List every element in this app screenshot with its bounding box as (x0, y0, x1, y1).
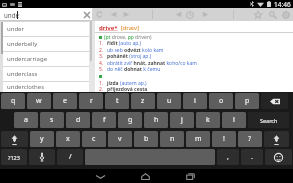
button[interactable]: f (92, 112, 116, 128)
staticText: drive* [draɪv] (99, 24, 139, 32)
button[interactable]: z (131, 93, 155, 109)
staticText: 2. (99, 47, 104, 54)
staticText: 1. (99, 40, 104, 47)
button[interactable]: w (27, 93, 51, 109)
button[interactable]: Emoji (265, 149, 292, 165)
button[interactable]: t (105, 93, 129, 109)
staticText: r (90, 96, 93, 106)
button[interactable]: Voice input (29, 149, 55, 165)
button[interactable]: q (1, 93, 25, 109)
button[interactable]: o (209, 93, 233, 109)
staticText: Search (260, 117, 278, 124)
button[interactable]: Forward (199, 8, 211, 21)
staticText: příjezdová cesta (107, 86, 148, 93)
staticText: . (251, 152, 253, 162)
button[interactable]: h (144, 112, 168, 128)
button[interactable]: e (53, 93, 77, 109)
button[interactable]: Shift (264, 131, 289, 147)
button[interactable]: l (222, 112, 246, 128)
button[interactable]: ?123 (1, 149, 27, 165)
button[interactable]: Swap languages (93, 8, 105, 21)
staticText: 3. (99, 53, 104, 60)
staticText: 1. (99, 80, 104, 87)
staticText: 4. (99, 60, 104, 67)
button[interactable]: underclothes (0, 82, 89, 92)
button[interactable]: n (160, 131, 184, 147)
button[interactable]: Settings (280, 8, 292, 21)
button[interactable]: Shift (1, 131, 28, 147)
button[interactable]: c (82, 131, 106, 147)
button[interactable]: . (241, 149, 263, 165)
button[interactable]: y (30, 131, 54, 147)
button[interactable]: Favorite (252, 8, 264, 21)
staticText: p (245, 96, 250, 106)
button[interactable]: m (186, 131, 210, 147)
button[interactable]: Search (267, 8, 279, 21)
button[interactable]: Clear (84, 12, 90, 18)
staticText: g (128, 115, 133, 125)
staticText: underbelly (7, 40, 38, 48)
button[interactable]: r (79, 93, 103, 109)
button[interactable]: Recents (179, 169, 201, 183)
staticText: q (11, 96, 16, 106)
button[interactable]: underbelly (0, 37, 89, 51)
button[interactable]: / (57, 149, 83, 165)
button[interactable]: underclass (0, 67, 89, 81)
staticText: 14:46 (274, 0, 291, 8)
staticText: / (69, 152, 72, 162)
staticText: do něč dohnat k čemu (107, 66, 161, 73)
button[interactable]: x (56, 131, 80, 147)
staticText: ! (223, 134, 225, 144)
staticText: underclass (7, 70, 38, 78)
button[interactable]: History (184, 8, 196, 21)
button[interactable]: under (0, 22, 89, 36)
staticText: x (66, 134, 70, 144)
button[interactable]: 3. (99, 53, 152, 60)
button[interactable]: Search (248, 112, 289, 128)
button[interactable]: ? (238, 131, 262, 147)
staticText: (pt drove, pp driven) (104, 34, 152, 41)
staticText: řídit (auto ap.) (107, 40, 142, 47)
staticText: under (7, 25, 24, 33)
button[interactable]: i (183, 93, 207, 109)
button[interactable]: s (40, 112, 64, 128)
staticText: v (118, 134, 122, 144)
button[interactable]: Next (120, 8, 132, 21)
button[interactable]: u (157, 93, 181, 109)
button[interactable]: j (170, 112, 194, 128)
button[interactable]: d (66, 112, 90, 128)
button[interactable]: k (196, 112, 220, 128)
staticText: y (40, 134, 44, 144)
button[interactable]: unde (0, 8, 92, 21)
button[interactable]: 5. (99, 66, 161, 73)
button[interactable]: p (235, 93, 259, 109)
button[interactable]: g (118, 112, 142, 128)
staticText: d (76, 115, 81, 125)
staticText: pohánět (stroj ap.) (107, 53, 152, 60)
button[interactable]: ! (212, 131, 236, 147)
staticText: i (194, 96, 196, 106)
button[interactable]: v (108, 131, 132, 147)
staticText: obrátit zvíř hnát, zahnat koho/co kam (107, 60, 197, 67)
staticText: 5. (99, 66, 104, 73)
button[interactable]: Home (134, 169, 156, 183)
button[interactable]: Back (89, 169, 111, 183)
button[interactable]: 4. (99, 60, 197, 67)
button[interactable]: Previous (107, 8, 119, 21)
button[interactable]: , (217, 149, 239, 165)
button[interactable]: Backspace (261, 93, 288, 109)
button[interactable]: b (134, 131, 158, 147)
button[interactable]: undercarriage (0, 52, 89, 66)
button[interactable]: 1. (99, 40, 142, 47)
staticText: unde (4, 11, 19, 19)
staticText: o (219, 96, 224, 106)
button[interactable]: Rewind (172, 8, 184, 21)
button[interactable]: 2. (99, 47, 164, 54)
staticText: s (50, 115, 54, 125)
button[interactable]: a (14, 112, 38, 128)
button[interactable]: 2. (99, 86, 148, 93)
staticText: ub seb odvézt kolo kam (107, 47, 164, 54)
staticText: c (92, 134, 96, 144)
button[interactable]: 1. (99, 80, 147, 87)
